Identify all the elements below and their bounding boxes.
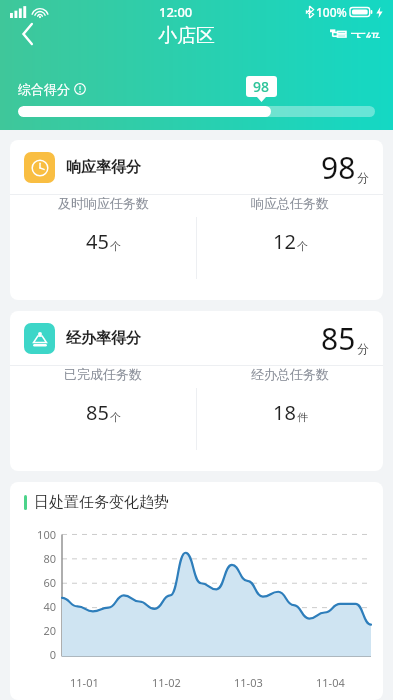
- staticText: 小店区: [158, 24, 215, 44]
- staticText: 个: [297, 239, 308, 253]
- staticText: 及时响应任务数: [58, 195, 149, 211]
- staticText: 经办总任务数: [251, 366, 329, 382]
- staticText: 18: [273, 399, 296, 426]
- staticText: 100: [14, 527, 56, 542]
- staticText: 12:00: [159, 3, 193, 21]
- staticText: 个: [110, 239, 121, 253]
- staticText: 下级: [351, 30, 381, 38]
- staticText: 60: [14, 575, 56, 590]
- staticText: 11-03: [234, 675, 263, 690]
- staticText: 85: [321, 318, 356, 359]
- staticText: 11-04: [316, 675, 345, 690]
- staticText: 响应率得分: [66, 158, 141, 177]
- button[interactable]: 响应率得分: [10, 140, 383, 300]
- staticText: 响应总任务数: [251, 195, 329, 211]
- staticText: 个: [110, 410, 121, 424]
- staticText: 0: [14, 647, 56, 662]
- staticText: 100%: [316, 4, 347, 20]
- staticText: 12: [273, 228, 296, 255]
- button[interactable]: 下级: [324, 24, 387, 44]
- staticText: 45: [86, 228, 109, 255]
- staticText: 件: [297, 410, 308, 424]
- staticText: 综合得分: [18, 81, 70, 97]
- button[interactable]: 经办率得分: [10, 311, 383, 471]
- staticText: 40: [14, 599, 56, 614]
- staticText: 已完成任务数: [64, 366, 142, 382]
- staticText: 11-01: [70, 675, 99, 690]
- button[interactable]: 日处置任务变化趋势: [10, 482, 383, 700]
- staticText: 分: [357, 341, 369, 356]
- staticText: 经办率得分: [66, 329, 141, 348]
- staticText: 11-02: [152, 675, 181, 690]
- staticText: 分: [357, 170, 369, 185]
- staticText: 98: [253, 77, 270, 96]
- staticText: 85: [86, 399, 109, 426]
- staticText: 日处置任务变化趋势: [34, 493, 169, 512]
- staticText: 20: [14, 623, 56, 638]
- staticText: 98: [321, 147, 356, 188]
- staticText: 80: [14, 551, 56, 566]
- button[interactable]: 返回: [6, 24, 50, 44]
